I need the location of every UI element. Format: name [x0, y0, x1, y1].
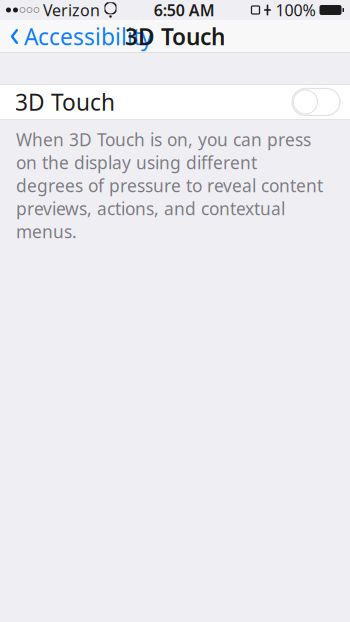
staticText: Accessibility: [24, 21, 153, 51]
staticText: When 3D Touch is on, you can press on th…: [16, 128, 323, 243]
staticText: 6:50 AM: [154, 0, 215, 21]
staticText: Verizon: [43, 0, 100, 21]
button[interactable]: Accessibility: [0, 16, 161, 56]
staticText: 3D Touch: [15, 87, 115, 117]
staticText: 100%: [275, 0, 315, 21]
button[interactable]: 3D Touch toggle, off: [0, 84, 350, 120]
staticText: 3D Touch: [125, 21, 225, 51]
